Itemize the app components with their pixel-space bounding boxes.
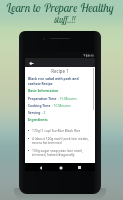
button[interactable]: Home: [57, 164, 64, 171]
staticText: Ingredients: [28, 117, 48, 122]
staticText: Black rice salad with pork and cashew Re…: [28, 76, 92, 86]
staticText: Serving: [28, 110, 41, 114]
button[interactable]: Recents: [76, 164, 83, 171]
staticText: Cooking Time: [28, 103, 51, 107]
staticText: 150g sugar snap peas (see note), trimmed…: [32, 148, 92, 156]
staticText: Preparation Time: [28, 96, 57, 100]
staticText: stuff..!!: [54, 14, 76, 25]
staticText: : 2: [41, 110, 46, 114]
staticText: Learn to Prepare Healthy: [6, 0, 114, 15]
staticText: : 15 Minutes: [57, 96, 77, 100]
button[interactable]: Back: [28, 60, 34, 66]
staticText: 4 (about 120g each) pork loin steaks, ex…: [32, 136, 92, 144]
staticText: Recipe 1: [28, 68, 92, 74]
staticText: 170g (1 cup) SunRice Black Rice: [32, 128, 81, 132]
staticText: : 10 Minutes: [51, 103, 71, 107]
button[interactable]: Back: [37, 164, 44, 171]
staticText: Basic Information: [28, 88, 59, 93]
